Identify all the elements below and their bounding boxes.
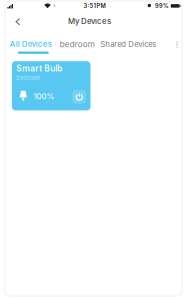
staticText: All Devices xyxy=(10,39,52,49)
staticText: bedroom xyxy=(60,39,95,49)
staticText: 3:51 PM xyxy=(84,2,106,9)
staticText: My Devices xyxy=(68,16,111,26)
staticText: Smart Bulb xyxy=(16,63,62,73)
button[interactable]: All Devices xyxy=(6,38,51,55)
staticText: 99% xyxy=(155,2,169,9)
button[interactable]: Smart Bulb xyxy=(12,61,91,110)
staticText: bedroom xyxy=(16,74,40,81)
button[interactable]: bedroom xyxy=(56,38,96,51)
staticText: 100% xyxy=(33,91,54,101)
button[interactable]: Back xyxy=(8,13,27,31)
staticText: Shared Devices xyxy=(100,39,156,49)
button[interactable]: Shared Devices xyxy=(96,38,159,51)
button[interactable]: More options xyxy=(170,37,184,52)
